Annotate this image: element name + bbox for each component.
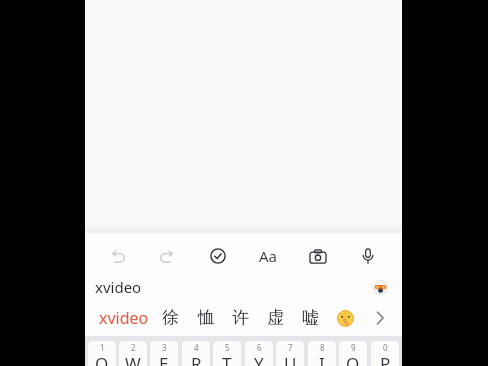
staticText: xvideo xyxy=(95,277,142,297)
staticText: T xyxy=(222,352,232,366)
staticText: 徐 xyxy=(162,307,179,328)
button[interactable] xyxy=(370,308,390,328)
button[interactable] xyxy=(103,242,131,270)
button[interactable] xyxy=(354,242,382,270)
button[interactable]: 6 xyxy=(245,341,273,366)
button[interactable]: 5 xyxy=(213,341,241,366)
staticText: 0 xyxy=(383,342,388,353)
button[interactable]: 嘘 xyxy=(296,306,324,329)
button[interactable]: xvideo xyxy=(95,306,153,329)
staticText: Aa xyxy=(259,246,278,266)
button[interactable]: 1 xyxy=(88,341,116,366)
staticText: 4 xyxy=(194,342,199,353)
staticText: W xyxy=(125,352,141,366)
staticText: I xyxy=(319,352,325,366)
staticText: 嘘 xyxy=(302,307,319,328)
staticText: 5 xyxy=(225,342,230,353)
button[interactable] xyxy=(304,242,332,270)
button[interactable]: 许 xyxy=(226,306,254,329)
button[interactable]: 3 xyxy=(150,341,178,366)
staticText: E xyxy=(159,352,169,366)
button[interactable] xyxy=(336,309,354,327)
button[interactable]: 恤 xyxy=(192,306,220,329)
button[interactable] xyxy=(153,242,181,270)
button[interactable]: 徐 xyxy=(156,306,184,329)
button[interactable]: 0 xyxy=(371,341,399,366)
staticText: 3 xyxy=(162,342,167,353)
staticText: 9 xyxy=(351,342,356,353)
button[interactable]: 4 xyxy=(182,341,210,366)
staticText: 恤 xyxy=(198,307,215,328)
staticText: 许 xyxy=(232,307,249,328)
button[interactable]: 2 xyxy=(119,341,147,366)
button[interactable]: 9 xyxy=(339,341,367,366)
button[interactable]: 8 xyxy=(308,341,336,366)
staticText: 1 xyxy=(100,342,105,353)
staticText: R xyxy=(191,352,202,366)
button[interactable] xyxy=(373,280,388,295)
button[interactable] xyxy=(204,242,232,270)
staticText: 7 xyxy=(288,342,293,353)
button[interactable]: 7 xyxy=(276,341,304,366)
staticText: xvideo xyxy=(99,307,149,329)
staticText: 6 xyxy=(257,342,262,353)
staticText: O xyxy=(346,352,360,366)
staticText: 2 xyxy=(131,342,136,353)
staticText: Q xyxy=(95,352,109,366)
button[interactable]: Aa xyxy=(253,242,283,270)
staticText: 8 xyxy=(320,342,325,353)
button[interactable]: 虚 xyxy=(261,306,289,329)
staticText: Y xyxy=(254,352,264,366)
staticText: 虚 xyxy=(267,307,284,328)
staticText: U xyxy=(284,352,297,366)
staticText: P xyxy=(380,352,391,366)
